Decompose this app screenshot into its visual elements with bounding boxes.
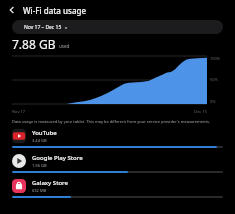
staticText: 0% (210, 99, 216, 104)
button[interactable]: YouTube (0, 129, 235, 154)
button[interactable]: Google Play Store (0, 154, 235, 179)
button[interactable]: Nov 17 – Dec 15 (12, 20, 223, 34)
staticText: Google Play Store (32, 154, 83, 162)
staticText: Data usage is measured by your tablet. T… (12, 119, 223, 124)
staticText: 3.44 GB (32, 138, 47, 143)
staticText: Dec 15 (194, 109, 207, 114)
staticText: 7.88 GB (12, 36, 56, 50)
staticText: Nov 17 – Dec 15 (24, 24, 62, 31)
staticText: 632 MB (32, 188, 47, 193)
staticText: YouTube (32, 129, 57, 137)
button[interactable]: Back (4, 2, 20, 18)
staticText: Galaxy Store (32, 179, 68, 187)
staticText: 50% (210, 77, 218, 82)
staticText: Nov 17 (12, 109, 26, 114)
staticText: used (59, 43, 70, 49)
staticText: Wi-Fi data usage (23, 5, 87, 16)
staticText: 1.96 GB (32, 163, 47, 168)
staticText: 100% (210, 56, 221, 61)
button[interactable]: Galaxy Store (0, 179, 235, 204)
